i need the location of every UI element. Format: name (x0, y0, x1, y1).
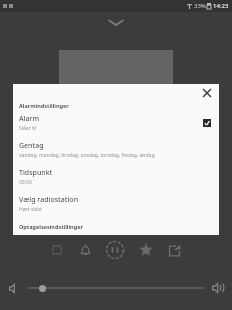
button[interactable]: Alarm (19, 114, 213, 132)
button[interactable]: Volume up (210, 280, 226, 296)
button[interactable]: Gentag (19, 141, 213, 159)
staticText: 00:00 (19, 179, 32, 186)
button[interactable]: Alarm enabled (201, 117, 213, 129)
staticText: Alarm (19, 114, 40, 124)
staticText: 14:23 (213, 2, 229, 10)
button[interactable]: Favourite (136, 240, 156, 260)
button[interactable]: Alarm (75, 240, 95, 260)
staticText: Gentag (19, 141, 44, 151)
button[interactable]: Pause (103, 238, 127, 262)
staticText: Slået til (19, 125, 37, 132)
button[interactable]: Mute (6, 280, 22, 296)
button[interactable]: Stop (48, 241, 66, 259)
button[interactable]: Close (200, 86, 214, 100)
button[interactable]: Tidspunkt (19, 168, 213, 186)
button[interactable]: Vælg radiostation (19, 195, 213, 213)
staticText: Tidspunkt (19, 168, 53, 178)
button[interactable]: Share (164, 240, 184, 260)
staticText: søndag, mandag, tirsdag, onsdag, torsdag… (19, 152, 155, 159)
staticText: Optagelsesindstillinger (19, 223, 83, 230)
staticText: Vælg radiostation (19, 195, 79, 205)
staticText: Hørt sidst (19, 206, 42, 213)
button[interactable]: Collapse (102, 16, 130, 30)
staticText: Alarmindstillinger (19, 102, 69, 109)
staticText: 33% (194, 2, 206, 10)
